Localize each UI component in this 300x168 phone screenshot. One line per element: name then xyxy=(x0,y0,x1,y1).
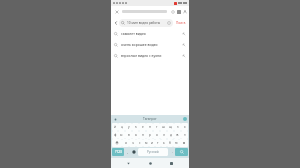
button[interactable]: Back xyxy=(113,20,119,26)
staticText: щ xyxy=(169,125,172,129)
button[interactable]: ц xyxy=(118,123,125,131)
button[interactable]: п xyxy=(139,131,146,139)
staticText: ь xyxy=(163,141,165,145)
button[interactable]: Voice input xyxy=(183,117,187,121)
staticText: взрослые видео с кухни xyxy=(121,53,179,58)
staticText: я xyxy=(125,141,127,145)
button[interactable]: ж xyxy=(174,131,181,139)
staticText: очень хорошее видео xyxy=(121,42,179,47)
staticText: и xyxy=(151,141,153,145)
staticText: д xyxy=(170,133,172,137)
button[interactable]: щ xyxy=(167,123,174,131)
button[interactable]: Sticker xyxy=(113,117,118,122)
staticText: р xyxy=(149,133,151,137)
button[interactable]: Comma xyxy=(124,148,130,156)
button[interactable]: н xyxy=(146,123,153,131)
button[interactable]: Search xyxy=(175,148,188,156)
staticText: , xyxy=(127,150,128,154)
staticText: м xyxy=(145,141,148,145)
button[interactable]: л xyxy=(160,131,167,139)
staticText: ж xyxy=(176,133,179,137)
staticText: э xyxy=(184,133,186,137)
button[interactable]: ч xyxy=(129,139,136,147)
button[interactable]: ь xyxy=(161,139,167,147)
button[interactable]: 10 мин видео работы xyxy=(119,19,173,27)
button[interactable]: Backspace xyxy=(179,139,188,147)
staticText: а xyxy=(135,133,137,137)
button[interactable]: р xyxy=(146,131,153,139)
button[interactable]: с xyxy=(136,139,143,147)
staticText: е xyxy=(142,125,144,129)
button[interactable]: у xyxy=(125,123,132,131)
button[interactable]: в xyxy=(125,131,132,139)
button[interactable]: з xyxy=(174,123,181,131)
staticText: Поиск xyxy=(176,21,186,25)
button[interactable]: ю xyxy=(173,139,179,147)
button[interactable]: Home xyxy=(146,159,155,168)
button[interactable]: к xyxy=(132,123,139,131)
button[interactable]: о xyxy=(153,131,160,139)
staticText: о xyxy=(156,133,158,137)
button[interactable]: т xyxy=(155,139,161,147)
button[interactable]: э xyxy=(181,131,188,139)
button[interactable]: Use suggestion xyxy=(181,31,186,36)
staticText: т xyxy=(157,141,159,145)
staticText: ы xyxy=(120,133,123,137)
staticText: . xyxy=(172,150,173,154)
staticText: самолет видео xyxy=(121,31,179,36)
staticText: б xyxy=(169,141,171,145)
button[interactable]: Use suggestion xyxy=(181,53,186,58)
button[interactable]: Refresh xyxy=(170,9,175,14)
staticText: 10 мин видео работы xyxy=(127,21,167,25)
staticText: н xyxy=(149,125,151,129)
button[interactable]: д xyxy=(167,131,174,139)
staticText: л xyxy=(163,133,165,137)
staticText: ц xyxy=(121,125,123,129)
button[interactable]: ф xyxy=(112,131,118,139)
staticText: ш xyxy=(162,125,165,129)
staticText: с xyxy=(139,141,141,145)
button[interactable]: ?123 xyxy=(112,148,124,156)
staticText: ?123 xyxy=(115,150,122,154)
staticText: Русский xyxy=(147,150,159,154)
button[interactable]: очень хорошее видео xyxy=(111,39,189,50)
staticText: ч xyxy=(132,141,134,145)
button[interactable]: м xyxy=(143,139,149,147)
button[interactable]: Clear xyxy=(167,21,171,25)
staticText: й xyxy=(114,125,116,129)
staticText: ф xyxy=(114,133,117,137)
button[interactable]: Account xyxy=(182,9,187,14)
button[interactable]: Close xyxy=(113,8,120,15)
staticText: г xyxy=(156,125,158,129)
button[interactable]: Русский xyxy=(138,148,168,156)
button[interactable]: ы xyxy=(118,131,125,139)
button[interactable]: х xyxy=(181,123,188,131)
button[interactable]: ш xyxy=(160,123,167,131)
staticText: з xyxy=(177,125,179,129)
button[interactable]: Shift xyxy=(112,139,122,147)
button[interactable]: а xyxy=(132,131,139,139)
button[interactable]: и xyxy=(149,139,155,147)
button[interactable]: Tabs xyxy=(176,9,181,14)
staticText: ю xyxy=(175,141,178,145)
button[interactable]: я xyxy=(122,139,129,147)
button[interactable]: е xyxy=(139,123,146,131)
button[interactable]: б xyxy=(167,139,173,147)
staticText: к xyxy=(135,125,137,129)
staticText: в xyxy=(128,133,130,137)
staticText: Таганрог xyxy=(143,117,157,121)
button[interactable]: самолет видео xyxy=(111,28,189,39)
staticText: п xyxy=(142,133,144,137)
staticText: у xyxy=(128,125,130,129)
button[interactable]: взрослые видео с кухни xyxy=(111,50,189,61)
button[interactable]: Поиск xyxy=(175,21,187,25)
button[interactable]: Back xyxy=(124,159,133,168)
button[interactable]: й xyxy=(112,123,118,131)
button[interactable]: г xyxy=(153,123,160,131)
staticText: х xyxy=(184,125,186,129)
button[interactable]: Use suggestion xyxy=(181,42,186,47)
button[interactable]: Recents xyxy=(167,159,176,168)
button[interactable]: Emoji xyxy=(130,148,137,156)
